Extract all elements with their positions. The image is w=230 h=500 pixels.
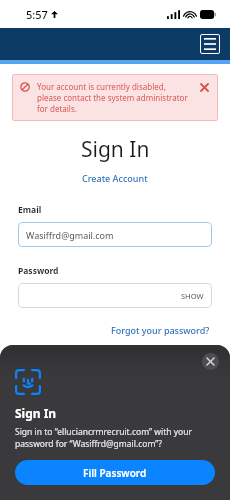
staticText: Sign In (15, 405, 57, 421)
button[interactable]: Dismiss (198, 81, 210, 93)
button[interactable]: Wasiffrd@gmail.com (18, 222, 212, 247)
staticText: Forgot your password? (111, 324, 210, 336)
staticText: Fill Password (83, 466, 147, 480)
staticText: Email (18, 204, 42, 216)
button[interactable]: Fill Password (15, 460, 215, 485)
button[interactable]: I'm not a robot (18, 346, 212, 392)
button[interactable]: SHOW (18, 283, 212, 308)
staticText: Wasiffrd@gmail.com (26, 229, 114, 241)
staticText: Sign in to “elluciancrmrecruit.com” with… (15, 426, 215, 450)
staticText: Sign In (81, 135, 150, 164)
button[interactable]: Create Account (80, 170, 150, 186)
staticText: SHOW (181, 291, 204, 301)
button[interactable]: Close (202, 353, 219, 370)
staticText: Your account is currently disabled, plea… (37, 81, 192, 114)
staticText: Create Account (82, 172, 148, 184)
staticText: Password (18, 265, 59, 277)
button[interactable]: Menu (200, 34, 220, 54)
staticText: 5:57 (26, 7, 48, 22)
button[interactable]: Forgot your password? (109, 322, 212, 338)
